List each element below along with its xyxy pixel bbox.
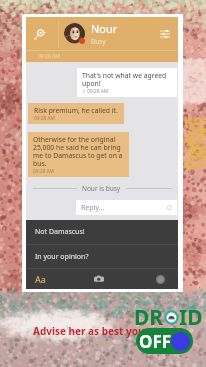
staticText: Advise her as best you can bbox=[33, 324, 165, 338]
staticText: Busy bbox=[91, 37, 106, 46]
button[interactable]: Camera bbox=[88, 269, 110, 289]
staticText: 09:28 AM bbox=[38, 53, 60, 60]
staticText: Nour is busy bbox=[82, 184, 121, 193]
staticText: Aa bbox=[35, 273, 46, 285]
staticText: Otherwise for the original 25,000 he sai… bbox=[33, 135, 125, 168]
staticText: OFF bbox=[139, 330, 172, 353]
staticText: ✓ 09:28 AM bbox=[82, 88, 109, 95]
button[interactable]: Not Damascus! bbox=[26, 220, 178, 244]
staticText: Nour bbox=[91, 21, 118, 36]
staticText: 09:28 AM bbox=[34, 115, 55, 122]
staticText: DR bbox=[134, 303, 164, 332]
button[interactable]: Aa bbox=[26, 269, 54, 289]
staticText: Not Damascus! bbox=[35, 227, 85, 237]
button[interactable]: Location bbox=[26, 17, 54, 50]
button[interactable]: Emoji bbox=[146, 269, 174, 289]
button[interactable]: Settings bbox=[152, 17, 178, 50]
staticText: ID bbox=[179, 303, 203, 332]
staticText: That's not what we agreed upon! bbox=[82, 71, 173, 88]
staticText: In your opinion? bbox=[35, 252, 89, 262]
staticText: 09:28 AM bbox=[33, 168, 54, 175]
button[interactable]: In your opinion? bbox=[26, 245, 178, 268]
staticText: Reply... bbox=[81, 203, 105, 213]
button[interactable]: OFF bbox=[136, 328, 193, 354]
button[interactable]: Reply... bbox=[76, 200, 177, 215]
staticText: Risk premium, he called it. bbox=[34, 106, 118, 115]
